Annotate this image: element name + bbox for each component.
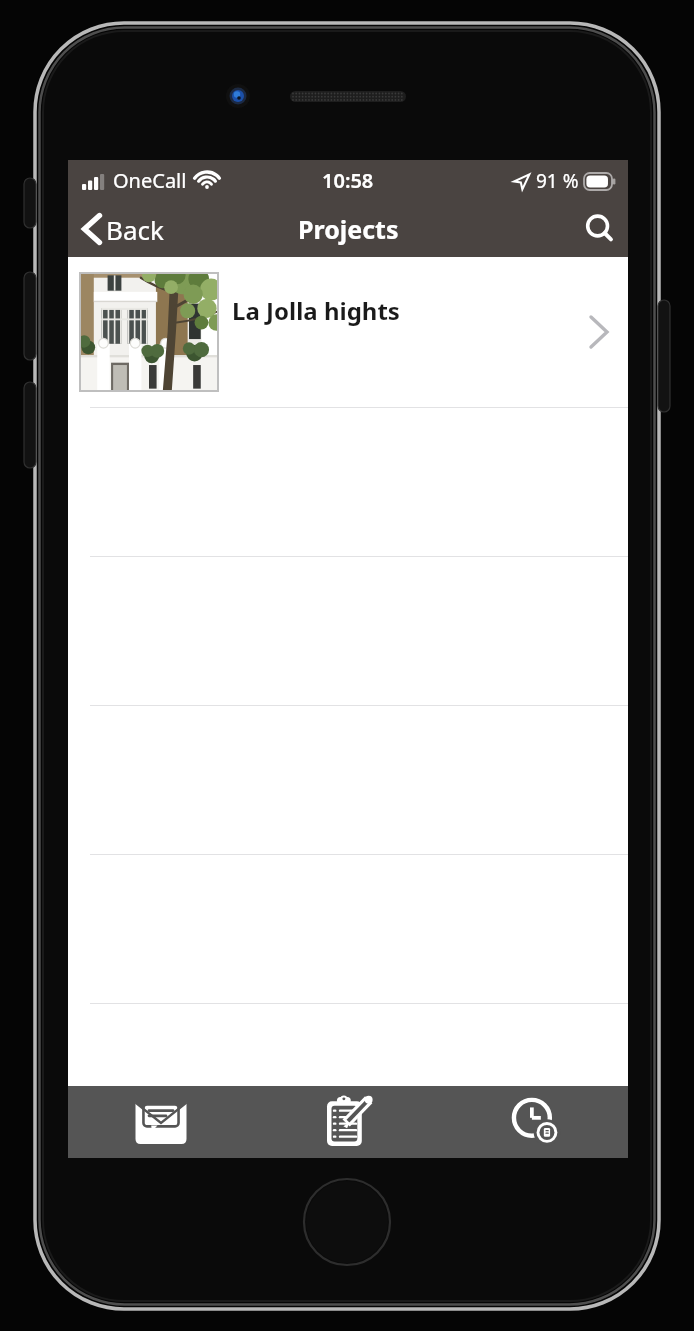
staticText: Back: [106, 212, 164, 247]
button[interactable]: Back: [68, 201, 178, 257]
staticText: 10:58: [322, 167, 374, 194]
staticText: Projects: [298, 212, 399, 246]
button[interactable]: Time: [441, 1086, 628, 1158]
staticText: La Jolla hights: [232, 294, 588, 327]
button[interactable]: Tasks: [254, 1086, 441, 1158]
button[interactable]: Search: [572, 201, 628, 257]
button[interactable]: Messages: [68, 1086, 254, 1158]
staticText: 91 %: [536, 168, 579, 194]
button[interactable]: La Jolla hights: [68, 257, 628, 407]
staticText: OneCall: [113, 167, 187, 194]
